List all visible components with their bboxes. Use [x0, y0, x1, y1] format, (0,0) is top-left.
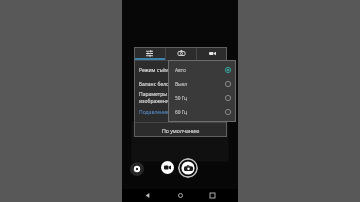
staticText: Подавление ме…: [139, 109, 181, 116]
button[interactable]: Settings: [130, 162, 144, 176]
staticText: Авто: [175, 67, 186, 74]
button[interactable]: Авто: [168, 63, 236, 77]
button[interactable]: Record video: [161, 161, 174, 174]
button[interactable]: 50 Гц: [168, 91, 236, 105]
button[interactable]: Take photo: [178, 158, 198, 178]
button[interactable]: Recent apps: [206, 189, 219, 202]
staticText: Выкл: [175, 81, 188, 88]
button[interactable]: Подавление ме…: [139, 105, 223, 119]
staticText: 50 Гц: [175, 95, 187, 102]
button[interactable]: По умолчанию: [134, 123, 227, 137]
staticText: Режим съёмки: [139, 67, 175, 74]
button[interactable]: Photo settings tab: [166, 47, 196, 60]
button[interactable]: Выкл: [168, 77, 236, 91]
staticText: Баланс белого: [139, 81, 175, 88]
staticText: Параметры изображения: [139, 91, 172, 105]
button[interactable]: Home: [174, 189, 187, 202]
button[interactable]: Баланс белого: [139, 77, 223, 91]
staticText: По умолчанию: [162, 127, 200, 134]
staticText: 60 Гц: [175, 109, 187, 116]
button[interactable]: Back: [141, 189, 154, 202]
button[interactable]: General settings tab: [134, 47, 165, 60]
button[interactable]: Режим съёмки: [139, 63, 223, 77]
button[interactable]: 60 Гц: [168, 105, 236, 119]
button[interactable]: Video settings tab: [197, 47, 227, 60]
button[interactable]: Параметры изображения: [139, 91, 223, 105]
